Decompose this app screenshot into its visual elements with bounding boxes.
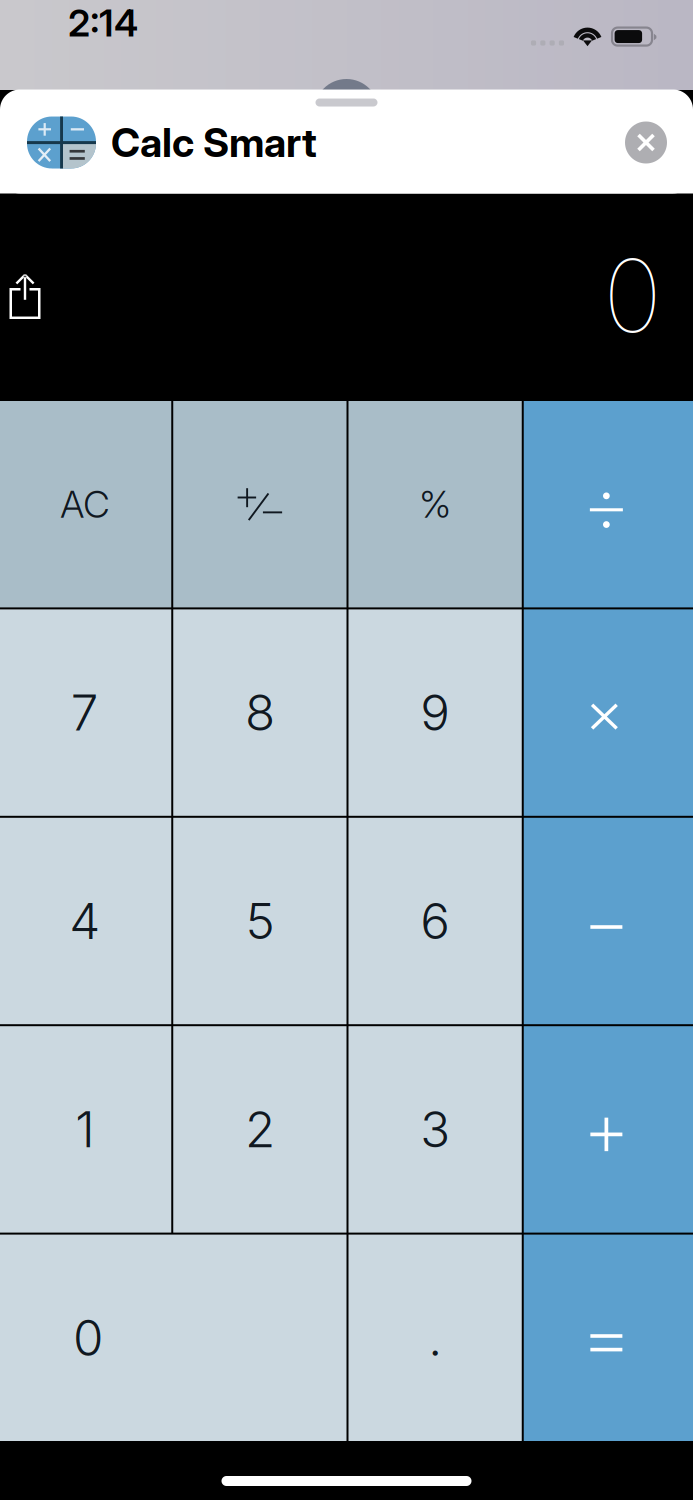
- button[interactable]: AC: [0, 401, 171, 607]
- button[interactable]: [524, 818, 693, 1024]
- staticText: 5: [245, 891, 274, 951]
- staticText: 3: [420, 1100, 450, 1159]
- button[interactable]: Close: [615, 111, 677, 173]
- staticText: 2:14: [68, 0, 138, 46]
- button[interactable]: [524, 1026, 693, 1233]
- button[interactable]: 5: [173, 818, 346, 1024]
- button[interactable]: [173, 401, 346, 607]
- staticText: %: [419, 482, 451, 527]
- staticText: 9: [420, 683, 450, 742]
- button[interactable]: [524, 609, 693, 816]
- staticText: 0: [73, 1308, 103, 1368]
- button[interactable]: 2: [173, 1026, 346, 1233]
- button[interactable]: %: [348, 401, 522, 607]
- button[interactable]: 8: [173, 609, 346, 816]
- staticText: 1: [75, 1100, 94, 1159]
- button[interactable]: 4: [0, 818, 171, 1024]
- button[interactable]: Share: [0, 260, 50, 332]
- button[interactable]: 1: [0, 1026, 171, 1233]
- button[interactable]: 7: [0, 609, 171, 816]
- button[interactable]: [524, 401, 693, 607]
- staticText: 4: [69, 891, 100, 951]
- button[interactable]: 6: [348, 818, 522, 1024]
- staticText: .: [428, 1308, 442, 1368]
- button[interactable]: .: [348, 1235, 522, 1441]
- staticText: 2: [245, 1100, 275, 1159]
- button[interactable]: 0: [0, 1235, 346, 1441]
- button[interactable]: [524, 1235, 693, 1441]
- staticText: AC: [60, 482, 109, 527]
- staticText: 8: [245, 683, 275, 742]
- button[interactable]: 9: [348, 609, 522, 816]
- staticText: Calc Smart: [111, 118, 317, 167]
- staticText: 0: [603, 235, 662, 356]
- staticText: 6: [420, 891, 450, 951]
- button[interactable]: 3: [348, 1026, 522, 1233]
- staticText: 7: [71, 683, 99, 742]
